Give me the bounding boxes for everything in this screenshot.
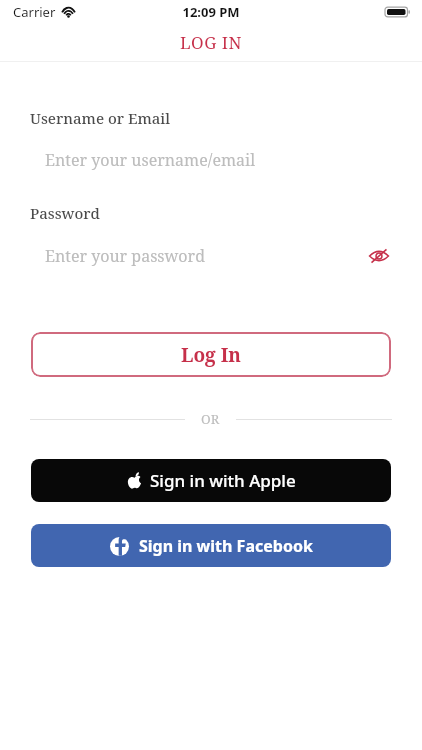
button[interactable]: Enter your username/email bbox=[0, 145, 422, 175]
staticText: LOG IN bbox=[180, 31, 242, 54]
staticText: Log In bbox=[181, 342, 241, 368]
staticText: Password bbox=[30, 203, 100, 223]
staticText: Sign in with Apple bbox=[150, 469, 296, 492]
staticText: Enter your username/email bbox=[45, 149, 256, 171]
button[interactable]: Show password bbox=[366, 243, 392, 269]
button[interactable]: Enter your password bbox=[0, 240, 422, 272]
staticText: Carrier bbox=[13, 3, 56, 21]
button[interactable]: Sign in with Apple bbox=[31, 459, 391, 502]
button[interactable]: Sign in with Facebook bbox=[31, 524, 391, 567]
staticText: Sign in with Facebook bbox=[139, 535, 313, 557]
staticText: Username or Email bbox=[30, 108, 171, 128]
staticText: 12:09 PM bbox=[182, 3, 240, 21]
staticText: Enter your password bbox=[45, 245, 205, 267]
staticText: OR bbox=[201, 410, 220, 428]
button[interactable]: Log In bbox=[31, 332, 391, 377]
